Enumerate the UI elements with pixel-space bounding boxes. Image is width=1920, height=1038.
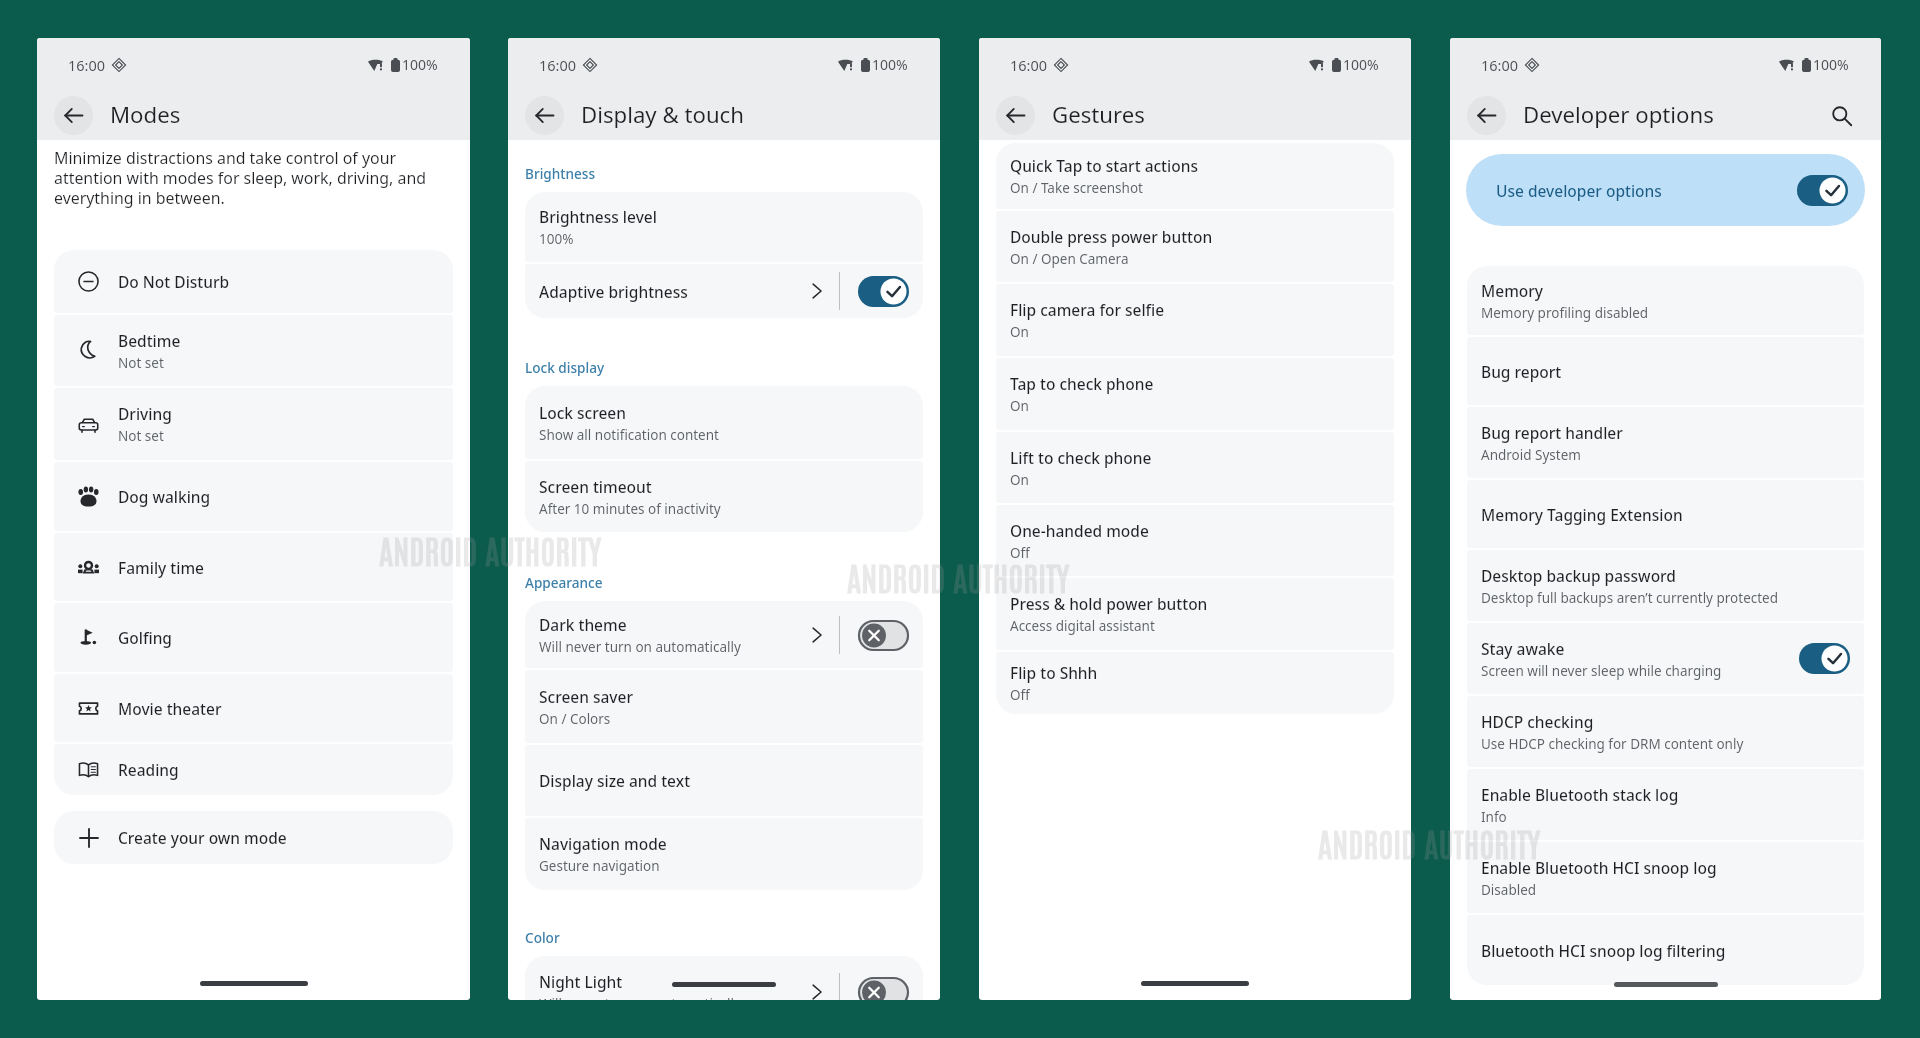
staticText: Off xyxy=(1010,544,1030,562)
staticText: Access digital assistant xyxy=(1010,617,1155,635)
button[interactable]: Enable Bluetooth HCI snoop log xyxy=(1467,842,1864,913)
button[interactable]: Night Light xyxy=(525,956,923,1000)
staticText: Minimize distractions and take control o… xyxy=(54,147,453,209)
staticText: Developer options xyxy=(1523,99,1714,129)
staticText: Double press power button xyxy=(1010,226,1213,247)
staticText: Enable Bluetooth HCI snoop log xyxy=(1481,857,1717,878)
button[interactable]: Back xyxy=(54,96,93,135)
staticText: Movie theater xyxy=(118,698,222,719)
button[interactable]: Bedtime xyxy=(54,315,453,386)
button[interactable]: On xyxy=(1799,643,1850,674)
staticText: Screen saver xyxy=(539,686,633,707)
staticText: Modes xyxy=(110,99,181,129)
staticText: Family time xyxy=(118,557,205,578)
staticText: Bluetooth HCI snoop log filtering xyxy=(1481,940,1726,961)
button[interactable]: Reading xyxy=(54,744,453,795)
button[interactable]: Do Not Disturb xyxy=(54,250,453,313)
staticText: Gestures xyxy=(1052,99,1145,129)
staticText: HDCP checking xyxy=(1481,711,1594,732)
staticText: 16:00 xyxy=(68,55,106,75)
button[interactable]: Screen timeout xyxy=(525,461,923,532)
staticText: Will never turn on automatically xyxy=(539,638,741,656)
staticText: On xyxy=(1010,471,1029,489)
staticText: Stay awake xyxy=(1481,638,1565,659)
staticText: Desktop backup password xyxy=(1481,565,1676,586)
staticText: 100% xyxy=(539,230,574,248)
staticText: Flip camera for selfie xyxy=(1010,299,1165,320)
staticText: Not set xyxy=(118,427,164,445)
staticText: Off xyxy=(1010,686,1030,704)
staticText: 100% xyxy=(1813,55,1849,74)
staticText: 100% xyxy=(1343,55,1379,74)
button[interactable]: Enable Bluetooth stack log xyxy=(1467,769,1864,840)
staticText: Display & touch xyxy=(581,99,744,129)
staticText: Use HDCP checking for DRM content only xyxy=(1481,735,1744,753)
staticText: Appearance xyxy=(525,573,603,592)
button[interactable]: Flip to Shhh xyxy=(996,652,1394,714)
staticText: Will never turn on automatically xyxy=(539,995,741,1000)
button[interactable]: Movie theater xyxy=(54,674,453,742)
button[interactable]: Family time xyxy=(54,533,453,601)
staticText: On / Take screenshot xyxy=(1010,179,1143,197)
button[interactable]: Back xyxy=(525,96,564,135)
button[interactable]: Brightness level xyxy=(525,192,923,262)
button[interactable]: Search xyxy=(1825,99,1859,133)
staticText: Flip to Shhh xyxy=(1010,662,1098,683)
button[interactable]: Off xyxy=(858,620,909,651)
button[interactable]: Adaptive brightness xyxy=(525,264,923,318)
staticText: Gesture navigation xyxy=(539,857,660,875)
staticText: Lift to check phone xyxy=(1010,447,1152,468)
button[interactable]: Back xyxy=(1467,96,1506,135)
button[interactable]: Bug report handler xyxy=(1467,407,1864,478)
button[interactable]: Dark theme xyxy=(525,601,923,668)
button[interactable]: Quick Tap to start actions xyxy=(996,143,1394,209)
button[interactable]: Use developer options xyxy=(1466,154,1865,226)
button[interactable]: Press & hold power button xyxy=(996,578,1394,650)
button[interactable]: Off xyxy=(858,977,909,1000)
staticText: Bug report xyxy=(1481,361,1562,382)
button[interactable]: Bug report xyxy=(1467,337,1864,405)
button[interactable]: Double press power button xyxy=(996,211,1394,282)
button[interactable]: Back xyxy=(996,96,1035,135)
staticText: Android System xyxy=(1481,446,1581,464)
staticText: Lock display xyxy=(525,358,605,377)
button[interactable]: HDCP checking xyxy=(1467,696,1864,767)
button[interactable]: Memory Tagging Extension xyxy=(1467,480,1864,548)
button[interactable]: On xyxy=(858,276,909,307)
button[interactable]: On xyxy=(1797,175,1848,206)
button[interactable]: Lock screen xyxy=(525,386,923,459)
button[interactable]: Tap to check phone xyxy=(996,358,1394,430)
button[interactable]: Dog walking xyxy=(54,462,453,531)
button[interactable]: Stay awake xyxy=(1467,623,1864,694)
staticText: On / Open Camera xyxy=(1010,250,1129,268)
button[interactable]: Screen saver xyxy=(525,670,923,743)
button[interactable]: Desktop backup password xyxy=(1467,550,1864,621)
staticText: Adaptive brightness xyxy=(539,281,688,302)
staticText: Dog walking xyxy=(118,486,211,507)
staticText: Night Light xyxy=(539,971,623,992)
staticText: Do Not Disturb xyxy=(118,271,230,292)
staticText: Memory xyxy=(1481,280,1544,301)
staticText: Driving xyxy=(118,403,172,424)
button[interactable]: Bluetooth HCI snoop log filtering xyxy=(1467,915,1864,985)
staticText: On xyxy=(1010,323,1029,341)
button[interactable]: Display size and text xyxy=(525,745,923,816)
button[interactable]: Navigation mode xyxy=(525,818,923,890)
staticText: ANDROID AUTHORITY xyxy=(379,529,602,570)
button[interactable]: Lift to check phone xyxy=(996,432,1394,503)
staticText: 100% xyxy=(402,55,438,74)
staticText: 16:00 xyxy=(539,55,577,75)
button[interactable]: Memory xyxy=(1467,266,1864,335)
staticText: Screen timeout xyxy=(539,476,652,497)
button[interactable]: Create your own mode xyxy=(54,811,453,864)
button[interactable]: Flip camera for selfie xyxy=(996,284,1394,356)
button[interactable]: Golfing xyxy=(54,603,453,672)
staticText: On xyxy=(1010,397,1029,415)
button[interactable]: One-handed mode xyxy=(996,505,1394,576)
staticText: Navigation mode xyxy=(539,833,667,854)
staticText: Brightness level xyxy=(539,206,657,227)
staticText: Create your own mode xyxy=(118,827,287,848)
button[interactable]: Driving xyxy=(54,388,453,460)
staticText: Brightness xyxy=(525,164,596,183)
staticText: 16:00 xyxy=(1481,55,1519,75)
